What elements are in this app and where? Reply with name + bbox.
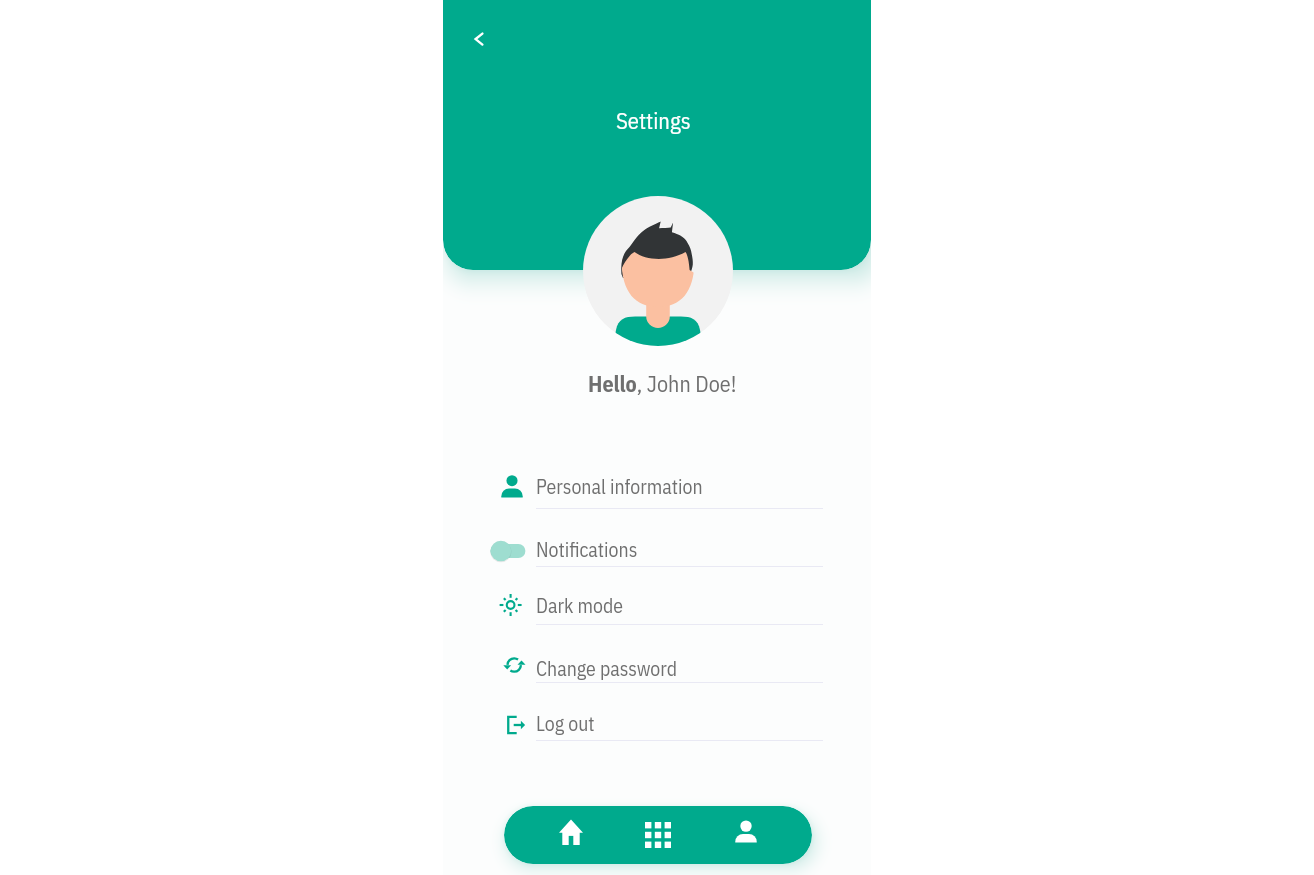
staticText: Notifications: [536, 537, 638, 563]
button[interactable]: Notifications: [489, 508, 826, 566]
staticText: Change password: [536, 656, 678, 682]
button[interactable]: Log out: [489, 682, 826, 740]
button[interactable]: Back: [461, 21, 497, 57]
button[interactable]: Change password: [489, 624, 826, 682]
staticText: Dark mode: [536, 593, 624, 619]
button[interactable]: Dark mode: [489, 566, 826, 624]
staticText: Log out: [536, 711, 595, 737]
staticText: Hello, John Doe!: [588, 369, 737, 398]
button[interactable]: Profile: [702, 806, 789, 864]
staticText: Settings: [616, 106, 691, 135]
button[interactable]: Personal information: [489, 449, 826, 508]
button[interactable]: Apps: [615, 806, 702, 864]
staticText: Personal information: [536, 474, 703, 500]
button[interactable]: Home: [527, 806, 615, 864]
